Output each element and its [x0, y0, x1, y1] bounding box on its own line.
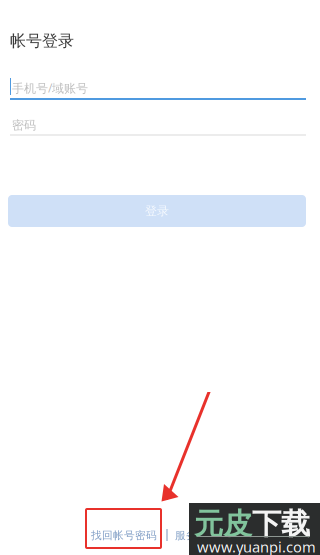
staticText: 找回帐号密码: [91, 529, 157, 542]
staticText: 下载: [252, 506, 310, 542]
button[interactable]: 找回帐号密码: [91, 529, 157, 542]
staticText: 帐号登录: [10, 31, 74, 51]
button[interactable]: 服务器设置: [175, 529, 230, 542]
staticText: www.yuanpi.com: [197, 537, 316, 555]
staticText: 密码: [12, 118, 36, 133]
staticText: 元皮: [194, 506, 252, 542]
staticText: 服务器设置: [175, 529, 230, 542]
staticText: 手机号/域账号: [12, 80, 88, 96]
staticText: 登录: [145, 204, 169, 218]
